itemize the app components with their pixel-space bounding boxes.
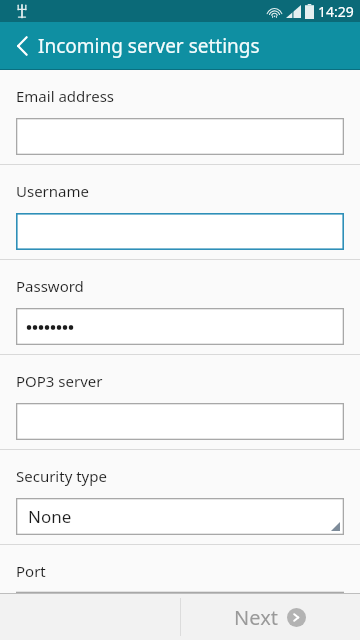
staticText: Port — [16, 561, 46, 581]
button[interactable]: Port — [0, 545, 360, 593]
staticText: Next — [234, 604, 278, 631]
staticText: Email address — [16, 86, 115, 106]
button[interactable]: Security type — [0, 450, 360, 544]
button[interactable]: Next — [180, 594, 360, 640]
staticText: 14:29 — [318, 2, 354, 21]
staticText: None — [28, 505, 72, 528]
button[interactable]: Username — [0, 165, 360, 259]
staticText: POP3 server — [16, 371, 103, 391]
staticText: Security type — [16, 466, 107, 486]
button[interactable]: Password — [0, 260, 360, 354]
button[interactable]: Email address — [0, 70, 360, 164]
staticText: Password — [16, 276, 84, 296]
button[interactable]: POP3 server — [0, 355, 360, 449]
staticText: •••••••• — [26, 316, 75, 338]
staticText: Username — [16, 181, 89, 201]
staticText: Incoming server settings — [38, 33, 260, 59]
button[interactable]: Navigate up — [0, 22, 44, 69]
